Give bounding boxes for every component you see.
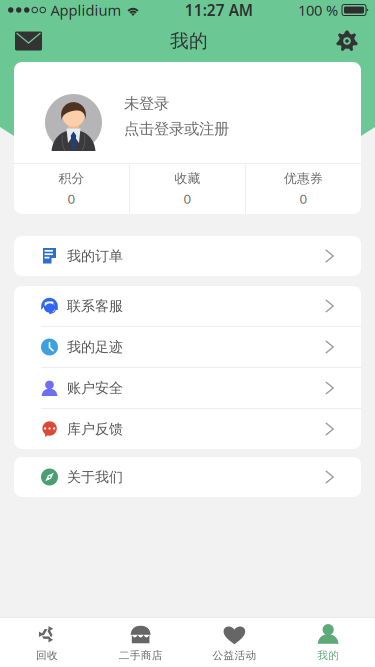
button[interactable]: 积分	[14, 164, 129, 214]
button[interactable]: 二手商店	[94, 617, 188, 667]
button[interactable]: 联系客服	[14, 286, 361, 326]
staticText: 点击登录或注册	[124, 119, 229, 139]
button[interactable]: 我的订单	[14, 236, 361, 276]
staticText: Applidium	[50, 0, 121, 20]
button[interactable]: 未登录	[14, 62, 361, 163]
button[interactable]: Settings	[324, 20, 375, 62]
button[interactable]: 关于我们	[14, 457, 361, 497]
staticText: 100 %	[298, 0, 338, 20]
staticText: 我的足迹	[67, 338, 123, 356]
staticText: 我的	[317, 649, 339, 662]
staticText: 账户安全	[67, 379, 123, 397]
staticText: 我的订单	[67, 247, 123, 265]
staticText: 未登录	[124, 94, 169, 113]
staticText: 收藏	[174, 170, 200, 186]
staticText: 0	[299, 189, 307, 208]
button[interactable]: 我的	[281, 617, 375, 667]
staticText: 0	[67, 189, 75, 208]
button[interactable]: Messages	[0, 21, 54, 60]
button[interactable]: 回收	[0, 617, 94, 667]
staticText: 积分	[58, 170, 84, 186]
button[interactable]: 公益活动	[187, 617, 281, 667]
staticText: 回收	[36, 649, 58, 662]
staticText: 0	[183, 189, 191, 208]
button[interactable]: 收藏	[130, 164, 245, 214]
staticText: 库户反馈	[67, 420, 123, 438]
staticText: 优惠券	[284, 170, 323, 186]
staticText: 二手商店	[119, 649, 163, 662]
button[interactable]: 库户反馈	[14, 409, 361, 449]
staticText: 11:27 AM	[185, 0, 253, 20]
button[interactable]: 我的足迹	[14, 327, 361, 367]
button[interactable]: 账户安全	[14, 368, 361, 408]
staticText: 我的	[170, 29, 208, 53]
staticText: 公益活动	[212, 649, 256, 662]
staticText: 关于我们	[67, 468, 123, 486]
staticText: 联系客服	[67, 297, 123, 315]
button[interactable]: 优惠券	[246, 164, 361, 214]
